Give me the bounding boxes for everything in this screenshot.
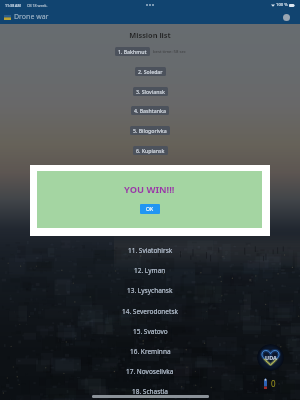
staticText: UDA bbox=[265, 354, 277, 361]
staticText: 11:38 AM bbox=[5, 3, 21, 8]
staticText: 5. Bilogorivka bbox=[133, 127, 167, 134]
button[interactable]: 2. Soledar bbox=[135, 67, 166, 76]
staticText: 11. Sviatohirsk bbox=[128, 246, 173, 255]
staticText: 14. Severodonetsk bbox=[122, 307, 178, 316]
staticText: 17. Novoselivka bbox=[126, 367, 174, 376]
staticText: 6. Kupiansk bbox=[136, 147, 165, 154]
button[interactable]: 6. Kupiansk bbox=[133, 146, 168, 155]
staticText: CB 18 week. bbox=[27, 3, 48, 8]
button[interactable]: 4. Bashtanka bbox=[131, 106, 169, 115]
button[interactable]: 17. Novoselivka bbox=[0, 361, 300, 381]
staticText: 1. Bakhmut bbox=[118, 48, 147, 55]
staticText: Drone war bbox=[14, 12, 49, 22]
button[interactable]: 14. Severodonetsk bbox=[0, 301, 300, 321]
button[interactable]: Account bbox=[283, 14, 290, 21]
button[interactable]: 3. Sloviansk bbox=[133, 87, 168, 96]
staticText: 13. Lysychansk bbox=[127, 286, 173, 295]
button[interactable]: 5. Bilogorivka bbox=[130, 126, 170, 135]
staticText: 3. Sloviansk bbox=[136, 88, 165, 95]
staticText: 0 bbox=[271, 378, 276, 389]
staticText: 4. Bashtanka bbox=[134, 107, 166, 114]
staticText: YOU WIN!!! bbox=[124, 183, 175, 196]
button[interactable]: 1. Bakhmut bbox=[115, 47, 150, 56]
button[interactable]: 18. Schastia bbox=[0, 381, 300, 400]
button[interactable]: UDA bbox=[257, 344, 284, 371]
staticText: 2. Soledar bbox=[138, 68, 163, 75]
staticText: best time: 58 sec bbox=[153, 49, 186, 55]
staticText: Mission list bbox=[0, 30, 300, 40]
staticText: OK bbox=[146, 206, 154, 213]
staticText: 18. Schastia bbox=[132, 387, 169, 396]
button[interactable]: 16. Kreminna bbox=[0, 341, 300, 361]
button[interactable]: 12. Lyman bbox=[0, 260, 300, 280]
button[interactable]: 15. Svatovo bbox=[0, 321, 300, 341]
button[interactable]: OK bbox=[140, 204, 160, 214]
button[interactable]: 13. Lysychansk bbox=[0, 280, 300, 300]
staticText: 16. Kreminna bbox=[130, 347, 171, 356]
staticText: 15. Svatovo bbox=[133, 327, 168, 336]
button[interactable]: 11. Sviatohirsk bbox=[0, 240, 300, 260]
staticText: 12. Lyman bbox=[134, 266, 166, 275]
staticText: 100 % bbox=[276, 2, 288, 8]
